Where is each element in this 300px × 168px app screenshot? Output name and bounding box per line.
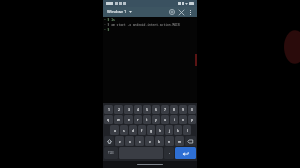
button[interactable]: Shift	[104, 136, 114, 146]
button[interactable]: o	[179, 115, 187, 124]
button[interactable]: s	[120, 125, 128, 135]
button[interactable]: p	[188, 115, 196, 124]
button[interactable]: l	[183, 125, 191, 135]
button[interactable]: q	[104, 115, 113, 124]
button[interactable]: 4	[134, 105, 142, 114]
staticText: l	[187, 128, 188, 133]
button[interactable]: 8	[170, 105, 178, 114]
staticText: 4	[137, 107, 139, 112]
staticText: .	[169, 151, 170, 155]
staticText: t	[146, 117, 148, 122]
staticText: ~ $ am start -a android.intent.action.MA…	[104, 23, 180, 27]
staticText: 7	[164, 107, 166, 112]
staticText: c	[139, 139, 141, 144]
staticText: h	[159, 128, 162, 133]
staticText: p	[191, 117, 194, 122]
button[interactable]: y	[152, 115, 160, 124]
staticText: y	[155, 117, 157, 122]
staticText: u	[164, 117, 167, 122]
button[interactable]: t	[143, 115, 151, 124]
button[interactable]: 6	[152, 105, 160, 114]
staticText: d	[132, 128, 135, 133]
button[interactable]: 1	[104, 105, 113, 114]
button[interactable]: 7	[161, 105, 169, 114]
button[interactable]: a	[110, 125, 119, 135]
button[interactable]: h	[156, 125, 164, 135]
staticText: w	[117, 117, 120, 122]
staticText: r	[137, 117, 139, 122]
button[interactable]: z	[115, 136, 124, 146]
button[interactable]: b	[155, 136, 164, 146]
button[interactable]: 0	[188, 105, 196, 114]
staticText: k	[177, 128, 179, 133]
staticText: ?123	[108, 151, 114, 155]
staticText: ~ $	[104, 28, 112, 32]
staticText: g	[150, 128, 153, 133]
staticText: o	[182, 117, 185, 122]
staticText: x	[129, 139, 131, 144]
button[interactable]: u	[161, 115, 169, 124]
staticText: 8	[173, 107, 175, 112]
button[interactable]: Close window	[177, 8, 185, 16]
button[interactable]: New window	[168, 8, 176, 16]
staticText: f	[141, 128, 143, 133]
staticText: 5	[146, 107, 148, 112]
button[interactable]: f	[138, 125, 146, 135]
button[interactable]: 2	[114, 105, 123, 114]
staticText: 2	[118, 107, 120, 112]
staticText: b	[158, 139, 161, 144]
staticText: n	[168, 139, 171, 144]
staticText: e	[128, 117, 130, 122]
staticText: m	[178, 139, 182, 144]
button[interactable]: 3	[124, 105, 133, 114]
button[interactable]: .	[164, 147, 174, 159]
button[interactable]: ?123	[104, 147, 118, 159]
button[interactable]: m	[175, 136, 184, 146]
staticText: q	[107, 117, 110, 122]
staticText: Window 1	[107, 9, 127, 15]
staticText: s	[123, 128, 125, 133]
staticText: 3	[128, 107, 130, 112]
button[interactable]: c	[135, 136, 144, 146]
staticText: ~ $ ls	[104, 18, 115, 22]
staticText: 9	[182, 107, 184, 112]
button[interactable]: Backspace	[185, 136, 196, 146]
button[interactable]: 9	[179, 105, 187, 114]
button[interactable]: k	[174, 125, 182, 135]
button[interactable]: j	[165, 125, 173, 135]
button[interactable]: d	[129, 125, 137, 135]
button[interactable]: r	[134, 115, 142, 124]
staticText: z	[119, 139, 121, 144]
staticText: 1	[108, 107, 110, 112]
staticText: v	[149, 139, 151, 144]
button[interactable]: i	[170, 115, 178, 124]
button[interactable]: n	[165, 136, 174, 146]
button[interactable]: More options	[186, 8, 194, 16]
button[interactable]: g	[147, 125, 155, 135]
button[interactable]: v	[145, 136, 154, 146]
button[interactable]: Window 1	[106, 8, 133, 16]
button[interactable]: 5	[143, 105, 151, 114]
staticText: 6	[155, 107, 157, 112]
staticText: j	[169, 128, 170, 133]
staticText: 0	[191, 107, 193, 112]
button[interactable]: w	[114, 115, 123, 124]
staticText: a	[114, 128, 116, 133]
button[interactable]: e	[124, 115, 133, 124]
button[interactable]: x	[125, 136, 134, 146]
staticText: i	[174, 117, 175, 122]
button[interactable]: Enter	[175, 147, 196, 159]
